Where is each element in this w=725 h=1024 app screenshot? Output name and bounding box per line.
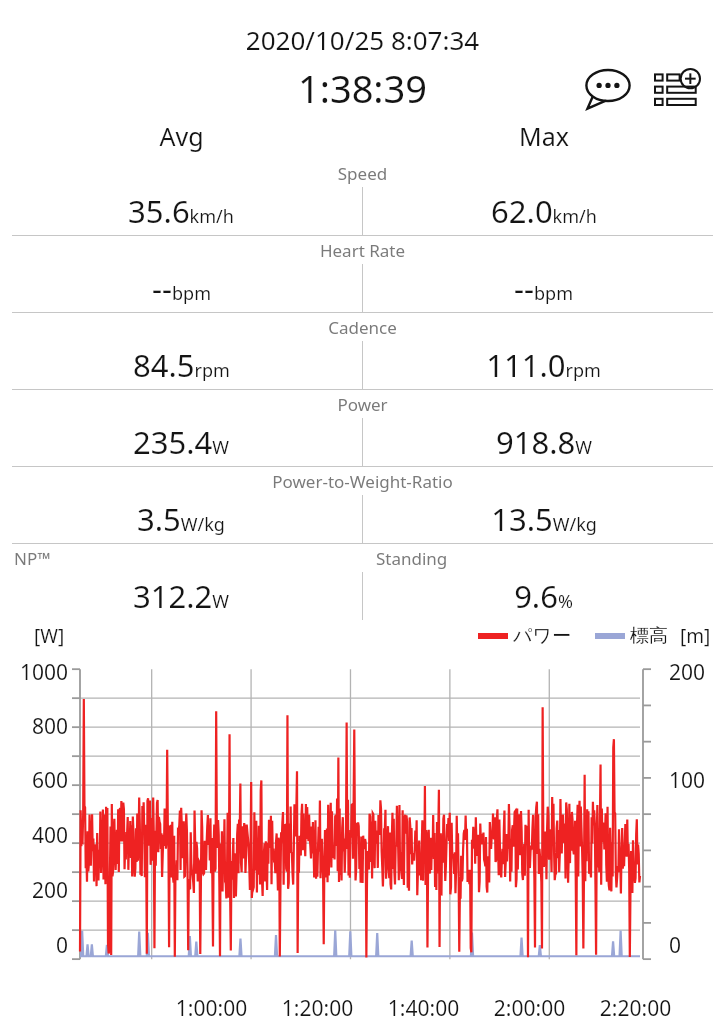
staticText: 918.8W: [496, 421, 592, 463]
staticText: 0: [0, 931, 68, 960]
staticText: 13.5W/kg: [491, 498, 597, 540]
staticText: 標高: [630, 624, 668, 648]
button[interactable]: Heart Rate: [0, 236, 725, 312]
staticText: 312.2W: [133, 575, 229, 617]
staticText: Cadence: [0, 316, 725, 339]
staticText: 400: [0, 821, 68, 850]
staticText: Speed: [0, 162, 725, 185]
staticText: Heart Rate: [0, 239, 725, 262]
staticText: Standing: [376, 547, 448, 570]
staticText: 2020/10/25 8:07:34: [0, 22, 725, 57]
staticText: 111.0rpm: [486, 344, 601, 386]
staticText: [m]: [680, 623, 711, 649]
staticText: 2:20:00: [585, 994, 686, 1023]
staticText: --bpm: [152, 267, 211, 309]
staticText: 1:38:39: [0, 62, 725, 114]
button[interactable]: Power: [0, 390, 725, 466]
staticText: 1:20:00: [267, 994, 368, 1023]
staticText: 235.4W: [133, 421, 229, 463]
button[interactable]: Power-to-Weight-Ratio: [0, 467, 725, 543]
button[interactable]: Add to list: [651, 61, 705, 115]
staticText: 1:00:00: [161, 994, 262, 1023]
staticText: Max: [519, 119, 569, 153]
staticText: 200: [0, 876, 68, 905]
staticText: 84.5rpm: [133, 344, 230, 386]
staticText: Avg: [159, 119, 204, 153]
staticText: パワー: [513, 624, 571, 648]
staticText: 1000: [0, 658, 68, 687]
staticText: 9.6%: [514, 575, 573, 617]
staticText: Power: [0, 393, 725, 416]
staticText: 200: [669, 658, 725, 687]
staticText: Power-to-Weight-Ratio: [0, 470, 725, 493]
staticText: NP™: [14, 547, 51, 570]
button[interactable]: Comments: [581, 61, 635, 115]
button[interactable]: NP™: [0, 544, 725, 620]
staticText: 62.0km/h: [491, 190, 597, 232]
staticText: 3.5W/kg: [137, 498, 225, 540]
staticText: --bpm: [514, 267, 573, 309]
button[interactable]: Cadence: [0, 313, 725, 389]
staticText: 600: [0, 766, 68, 795]
staticText: 0: [669, 931, 725, 960]
staticText: 35.6km/h: [128, 190, 234, 232]
staticText: 1:40:00: [373, 994, 474, 1023]
staticText: 2:00:00: [479, 994, 580, 1023]
staticText: 100: [669, 766, 725, 795]
staticText: 800: [0, 712, 68, 741]
staticText: [W]: [34, 623, 65, 649]
button[interactable]: Speed: [0, 159, 725, 235]
